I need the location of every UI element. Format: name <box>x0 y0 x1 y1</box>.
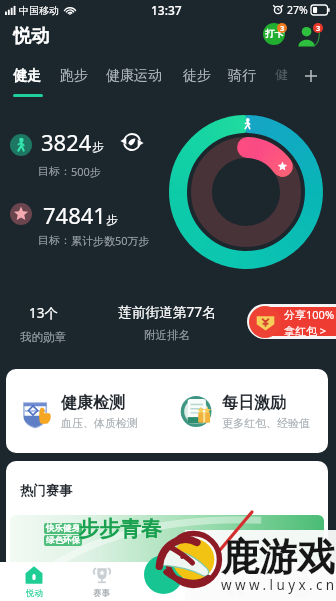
staticText: 我的勋章 <box>20 330 66 344</box>
button[interactable]: 健康检测 <box>6 369 167 453</box>
button[interactable]: 发现 <box>202 562 269 601</box>
staticText: 500步 <box>71 164 101 179</box>
staticText: 13:37 <box>151 2 182 18</box>
staticText: 莲前街道第77名 <box>118 302 216 321</box>
staticText: 打卡 <box>265 28 284 40</box>
staticText: 徒步 <box>183 67 211 85</box>
staticText: 中国移动 <box>19 4 59 17</box>
button[interactable]: 13个 <box>12 304 74 344</box>
button[interactable]: 徒步 <box>176 62 218 90</box>
staticText: 悦动 <box>26 588 43 599</box>
staticText: 13个 <box>29 304 58 322</box>
staticText: 健康运动 <box>106 67 162 85</box>
staticText: 27% <box>287 3 308 17</box>
staticText: 3 <box>316 23 321 33</box>
staticText: 74841 <box>43 200 106 230</box>
staticText: 赛事 <box>93 588 110 599</box>
staticText: 健康检测 <box>61 393 125 413</box>
staticText: 3 <box>280 23 285 33</box>
staticText: 我的 <box>294 588 311 599</box>
staticText: 健走 <box>13 67 41 85</box>
button[interactable]: Add <box>299 64 323 88</box>
staticText: 拿红包 > <box>284 323 327 336</box>
staticText: 发现 <box>227 588 244 599</box>
staticText: 热门赛事 <box>20 482 72 498</box>
button[interactable]: Friends <box>295 21 325 51</box>
staticText: 步 <box>92 140 104 154</box>
button[interactable]: Sync <box>122 132 142 152</box>
button[interactable]: Start activity <box>144 555 183 594</box>
staticText: 目标： <box>38 164 71 178</box>
staticText: 3824 <box>41 127 92 157</box>
staticText: 附近排名 <box>144 328 190 342</box>
staticText: 跑步 <box>60 67 88 85</box>
button[interactable]: 每日激励 <box>167 369 328 453</box>
button[interactable]: 快乐健身 <box>10 515 324 601</box>
staticText: 步 <box>106 213 118 227</box>
staticText: 累计步数50万步 <box>71 233 150 248</box>
button[interactable]: 莲前街道第77名 <box>116 302 217 342</box>
staticText: 每日激励 <box>222 393 286 413</box>
staticText: 骑行 <box>228 67 256 85</box>
button[interactable]: 我的 <box>269 562 336 601</box>
staticText: 分享100% <box>284 307 335 322</box>
button[interactable]: 赛事 <box>68 562 135 601</box>
staticText: 更多红包、经验值 <box>222 416 310 430</box>
button[interactable]: 分享100% <box>250 307 336 336</box>
staticText: 步步青春 <box>78 516 162 542</box>
staticText: 目标： <box>38 233 71 247</box>
staticText: www.luyx.cn <box>221 576 336 594</box>
staticText: 悦动 <box>13 25 49 48</box>
staticText: 血压、体质检测 <box>61 416 138 430</box>
staticText: 鹿游戏 <box>221 533 335 581</box>
button[interactable]: 健走 <box>6 62 48 90</box>
staticText: 快乐健身 <box>46 523 80 534</box>
staticText: 绿色环保 <box>46 535 80 546</box>
button[interactable]: 骑行 <box>221 62 263 90</box>
button[interactable]: 悦动 <box>0 562 68 601</box>
staticText: 健 <box>275 66 288 82</box>
button[interactable]: 跑步 <box>53 62 95 90</box>
button[interactable]: 健康运动 <box>99 62 169 90</box>
button[interactable]: 打卡 <box>261 21 291 51</box>
